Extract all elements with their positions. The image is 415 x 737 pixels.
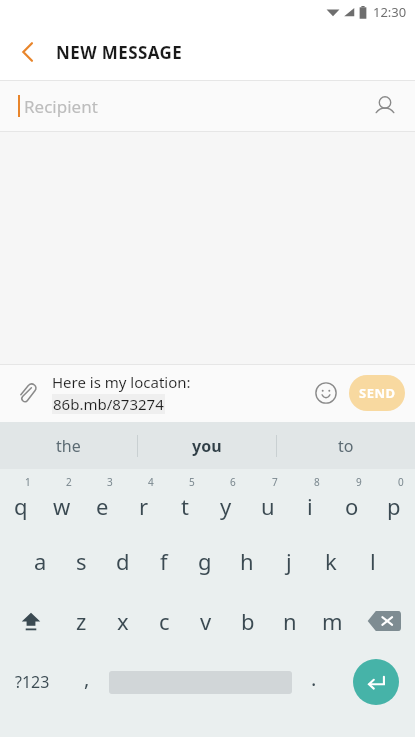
button[interactable]: 6 [205, 469, 247, 531]
button[interactable]: Here is my location: [52, 372, 307, 414]
staticText: f [160, 546, 168, 576]
button[interactable]: 4 [123, 469, 164, 531]
staticText: i [307, 491, 313, 521]
button[interactable]: 7 [247, 469, 289, 531]
button[interactable]: Emoji [307, 374, 345, 412]
button[interactable]: f [143, 531, 184, 591]
button[interactable]: Shift [0, 591, 61, 651]
staticText: k [325, 546, 337, 576]
button[interactable]: b [227, 591, 269, 651]
button[interactable]: Choose contact [363, 84, 407, 128]
button[interactable]: x [102, 591, 143, 651]
staticText: g [198, 546, 212, 576]
staticText: . [311, 665, 317, 692]
button[interactable]: s [61, 531, 102, 591]
staticText: l [370, 546, 376, 576]
button[interactable]: to [277, 422, 415, 469]
staticText: j [286, 546, 292, 576]
staticText: 2 [66, 475, 72, 489]
button[interactable]: z [61, 591, 102, 651]
staticText: n [283, 606, 297, 636]
staticText: , [84, 665, 90, 692]
staticText: d [116, 546, 130, 576]
button[interactable]: a [20, 531, 61, 591]
staticText: 4 [148, 475, 154, 489]
button[interactable]: m [311, 591, 353, 651]
staticText: 7 [272, 475, 278, 489]
staticText: NEW MESSAGE [56, 41, 183, 64]
button[interactable]: ?123 [0, 651, 65, 713]
staticText: 12:30 [373, 3, 407, 21]
button[interactable]: 5 [164, 469, 205, 531]
staticText: the [56, 435, 81, 457]
button[interactable]: 2 [41, 469, 82, 531]
staticText: w [53, 491, 71, 521]
staticText: 9 [356, 475, 362, 489]
staticText: 0 [398, 475, 404, 489]
staticText: 6 [230, 475, 236, 489]
staticText: o [345, 491, 359, 521]
button[interactable]: k [310, 531, 352, 591]
button[interactable]: g [184, 531, 226, 591]
button[interactable]: j [268, 531, 310, 591]
staticText: x [117, 606, 129, 636]
staticText: 86b.mb/873274 [53, 394, 164, 414]
staticText: z [76, 606, 87, 636]
staticText: c [159, 606, 170, 636]
staticText: SEND [359, 384, 396, 402]
button[interactable]: you [138, 422, 276, 469]
staticText: v [200, 606, 212, 636]
staticText: u [261, 491, 275, 521]
button[interactable]: c [143, 591, 185, 651]
staticText: a [34, 546, 47, 576]
staticText: y [220, 491, 232, 521]
staticText: to [338, 435, 354, 457]
button[interactable]: Recipient [0, 80, 415, 132]
staticText: you [192, 435, 222, 457]
button[interactable]: 1 [0, 469, 41, 531]
staticText: t [181, 491, 189, 521]
staticText: ?123 [15, 671, 50, 693]
button[interactable]: Space [109, 651, 292, 713]
button[interactable]: v [185, 591, 227, 651]
staticText: q [14, 491, 28, 521]
staticText: s [76, 546, 87, 576]
button[interactable]: SEND [349, 375, 405, 411]
button[interactable]: 8 [289, 469, 331, 531]
staticText: Here is my location: [52, 372, 191, 392]
staticText: 5 [189, 475, 195, 489]
button[interactable]: d [102, 531, 143, 591]
button[interactable]: l [352, 531, 394, 591]
button[interactable]: Back [6, 30, 50, 74]
button[interactable]: n [269, 591, 311, 651]
staticText: p [387, 491, 401, 521]
button[interactable]: 3 [82, 469, 123, 531]
staticText: 8 [314, 475, 320, 489]
staticText: 1 [25, 475, 31, 489]
button[interactable]: the [0, 422, 137, 469]
staticText: h [240, 546, 254, 576]
staticText: Recipient [24, 95, 98, 118]
button[interactable]: 9 [331, 469, 373, 531]
staticText: r [139, 491, 149, 521]
button[interactable]: Enter [336, 651, 415, 713]
button[interactable]: , [65, 651, 109, 713]
button[interactable]: Attach [8, 374, 46, 412]
staticText: b [241, 606, 255, 636]
staticText: e [96, 491, 109, 521]
button[interactable]: Backspace [353, 591, 415, 651]
staticText: 3 [107, 475, 113, 489]
button[interactable]: 0 [373, 469, 415, 531]
button[interactable]: h [226, 531, 268, 591]
staticText: m [322, 606, 343, 636]
button[interactable]: . [292, 651, 336, 713]
